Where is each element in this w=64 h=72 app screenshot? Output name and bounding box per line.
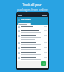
staticText: Track all your [22,3,42,7]
staticText: packages from online [17,8,48,12]
button[interactable] [17,51,48,56]
button[interactable] [17,56,48,61]
button[interactable]: Add package [41,61,46,66]
button[interactable] [17,34,48,41]
button[interactable] [17,29,48,34]
button[interactable]: App bar [17,17,48,22]
button[interactable] [17,25,48,29]
staticText: Packages [21,18,31,21]
button[interactable]: Search [18,23,31,25]
button[interactable] [17,46,48,51]
button[interactable] [17,41,48,46]
